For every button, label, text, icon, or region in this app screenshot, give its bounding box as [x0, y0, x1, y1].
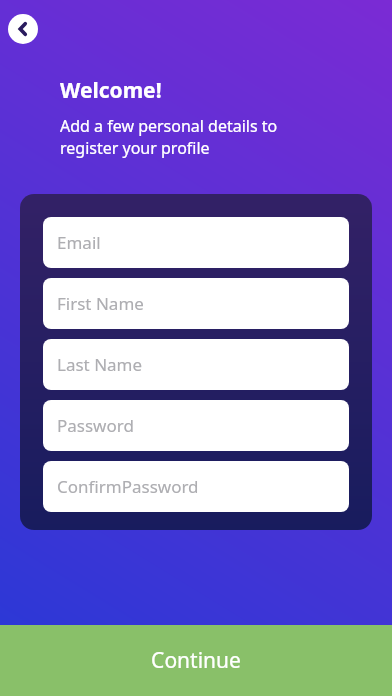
button[interactable]: Password [43, 400, 349, 451]
staticText: Password [57, 414, 134, 437]
staticText: First Name [57, 292, 144, 315]
button[interactable]: ConfirmPassword [43, 461, 349, 512]
staticText: Welcome! [60, 76, 162, 105]
button[interactable]: Last Name [43, 339, 349, 390]
button[interactable]: Email [43, 217, 349, 268]
button[interactable]: Continue [0, 625, 392, 696]
staticText: Email [57, 231, 101, 254]
button[interactable]: Back [8, 14, 38, 44]
staticText: Add a few personal details to register y… [60, 115, 278, 159]
staticText: ConfirmPassword [57, 475, 199, 498]
button[interactable]: First Name [43, 278, 349, 329]
staticText: Continue [151, 646, 241, 675]
staticText: Last Name [57, 353, 143, 376]
